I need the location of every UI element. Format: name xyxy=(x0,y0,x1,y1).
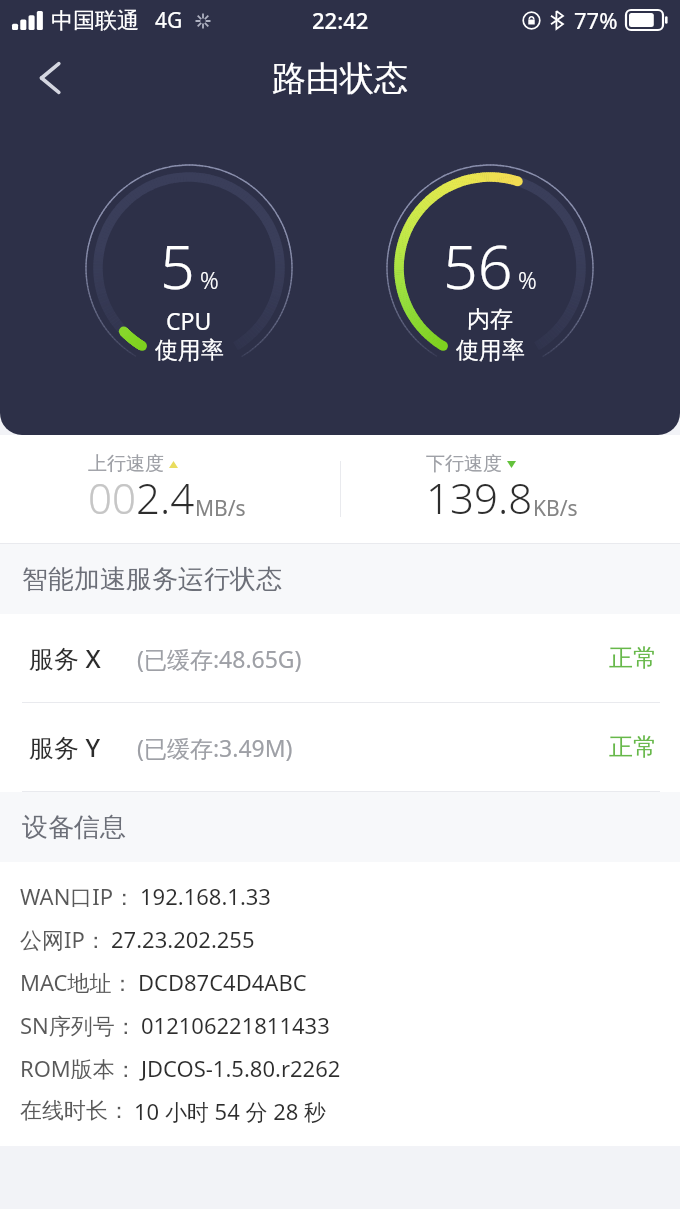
staticText: 012106221811433 xyxy=(141,1010,330,1040)
staticText: SN序列号： xyxy=(20,1010,137,1040)
staticText: (已缓存:48.65G) xyxy=(137,643,302,674)
staticText: 服务 Y xyxy=(29,730,101,764)
button[interactable]: 服务 Y xyxy=(0,703,680,791)
staticText: 使用率 xyxy=(456,336,525,365)
staticText: 正常 xyxy=(609,732,657,762)
staticText: 使用率 xyxy=(155,336,224,365)
staticText: 56 xyxy=(443,224,513,307)
staticText: 4G xyxy=(155,6,183,35)
staticText: KB/s xyxy=(533,494,578,523)
staticText: 服务 X xyxy=(29,641,101,675)
staticText: 正常 xyxy=(609,643,657,673)
staticText: MB/s xyxy=(195,494,246,523)
staticText: WAN口IP： xyxy=(20,881,136,911)
staticText: 设备信息 xyxy=(22,811,126,844)
staticText: % xyxy=(518,264,537,295)
staticText: ROM版本： xyxy=(20,1053,137,1083)
staticText: 10 小时 54 分 28 秒 xyxy=(134,1096,327,1126)
button[interactable]: Back xyxy=(26,54,74,102)
staticText: MAC地址： xyxy=(20,967,134,997)
staticText: JDCOS-1.5.80.r2262 xyxy=(141,1053,341,1083)
staticText: (已缓存:3.49M) xyxy=(137,732,293,763)
staticText: 139.8 xyxy=(426,469,533,526)
staticText: % xyxy=(200,264,219,295)
staticText: 5 xyxy=(160,224,195,307)
staticText: 在线时长： xyxy=(20,1097,130,1125)
staticText: 公网IP： xyxy=(20,924,107,954)
staticText: 内存 xyxy=(467,305,513,334)
staticText: 22:42 xyxy=(312,5,369,35)
staticText: 192.168.1.33 xyxy=(140,881,271,911)
staticText: CPU xyxy=(166,305,212,336)
staticText: 中国联通 xyxy=(51,7,139,35)
staticText: 2.4 xyxy=(136,469,195,526)
staticText: 00 xyxy=(88,469,136,526)
staticText: 路由状态 xyxy=(272,57,408,100)
staticText: 上行速度 xyxy=(88,452,164,476)
staticText: 27.23.202.255 xyxy=(111,924,255,954)
button[interactable]: 服务 X xyxy=(0,614,680,702)
staticText: 下行速度 xyxy=(426,452,502,476)
staticText: DCD87C4D4ABC xyxy=(138,967,307,997)
staticText: 77% xyxy=(574,5,618,35)
staticText: 智能加速服务运行状态 xyxy=(22,563,282,596)
